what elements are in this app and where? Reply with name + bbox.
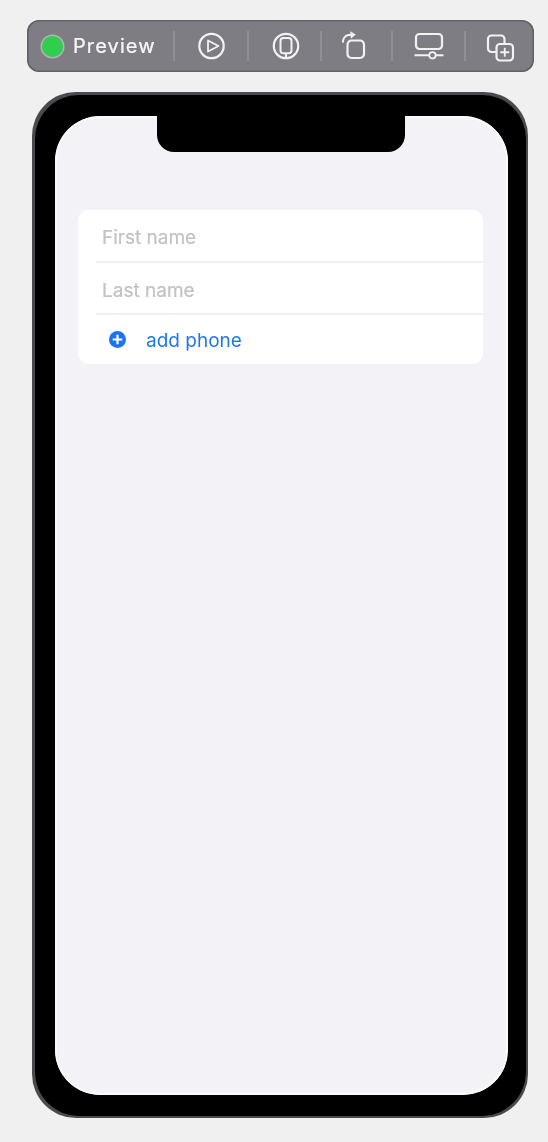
button[interactable] xyxy=(320,20,393,72)
button[interactable]: Preview xyxy=(27,20,174,72)
staticText: Last name xyxy=(102,279,195,302)
staticText: add phone xyxy=(146,329,242,352)
button[interactable] xyxy=(393,20,466,72)
staticText: First name xyxy=(102,226,197,249)
button[interactable]: Last name xyxy=(78,263,483,313)
button[interactable]: First name xyxy=(78,210,483,261)
button[interactable] xyxy=(466,20,534,72)
staticText: Preview xyxy=(73,34,156,58)
button[interactable] xyxy=(174,20,247,72)
button[interactable] xyxy=(247,20,320,72)
button[interactable]: add phone xyxy=(78,315,483,364)
